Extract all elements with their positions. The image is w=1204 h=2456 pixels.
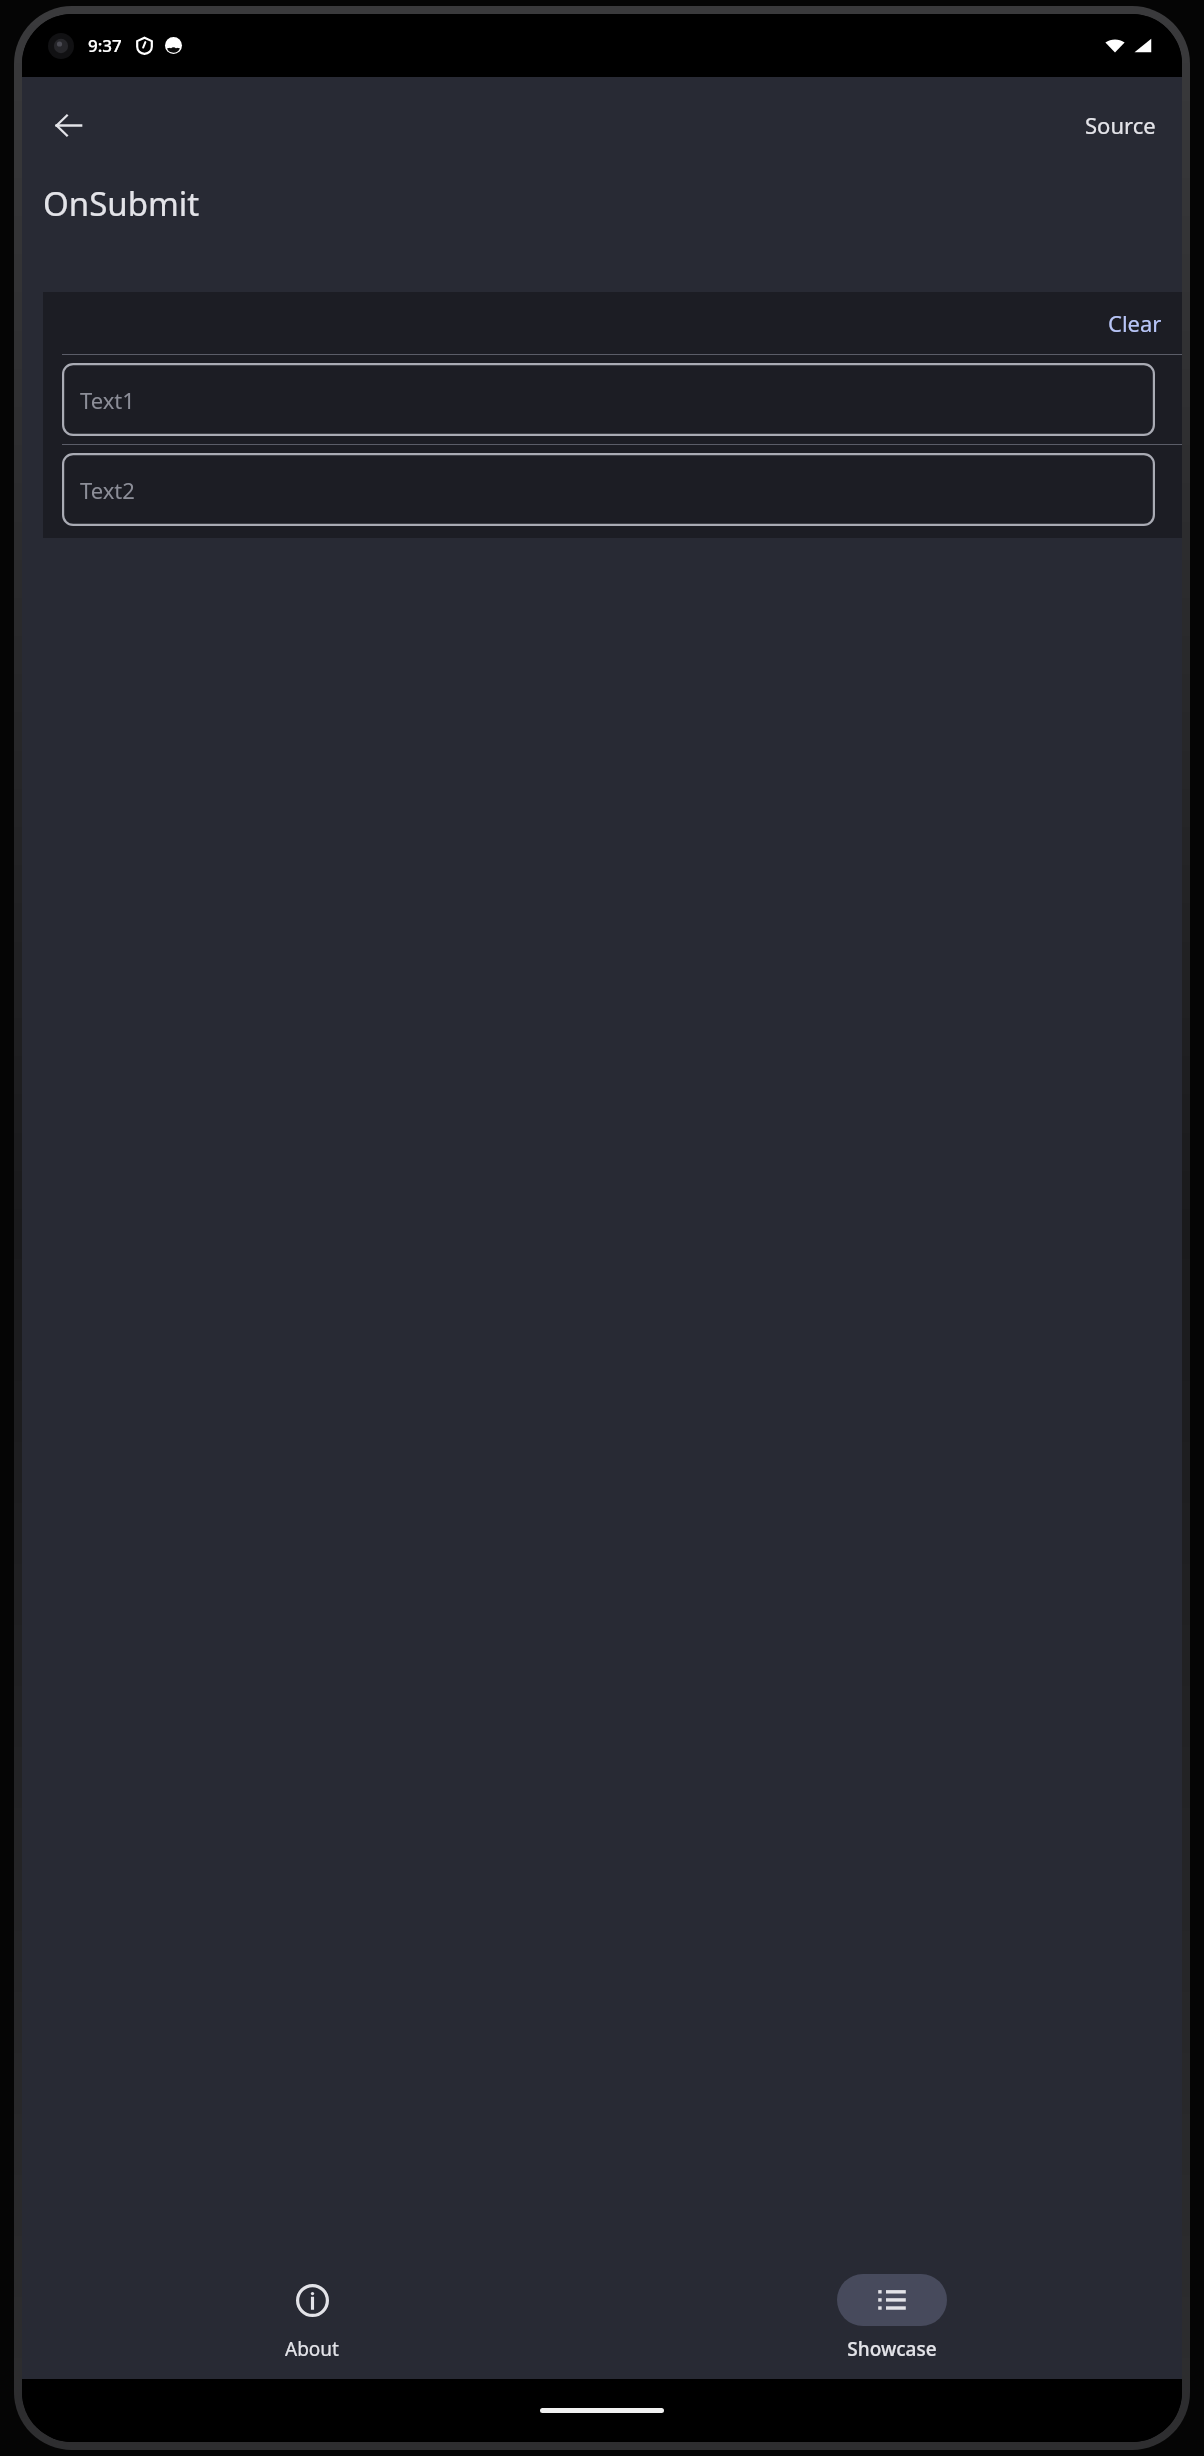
button[interactable]: Text1 bbox=[62, 363, 1155, 436]
staticText: Showcase bbox=[847, 2336, 937, 2362]
staticText: Text2 bbox=[80, 475, 135, 505]
staticText: About bbox=[285, 2336, 339, 2362]
staticText: 9:37 bbox=[88, 34, 122, 57]
staticText: OnSubmit bbox=[43, 181, 200, 226]
staticText: Text1 bbox=[80, 385, 135, 415]
button[interactable]: Source bbox=[1073, 102, 1168, 148]
button[interactable]: Text2 bbox=[62, 453, 1155, 526]
staticText: Clear bbox=[1108, 308, 1162, 338]
staticText: Source bbox=[1085, 110, 1156, 140]
button[interactable]: Clear bbox=[1096, 302, 1174, 344]
button[interactable]: Back bbox=[40, 97, 96, 153]
button[interactable]: About bbox=[22, 2257, 602, 2379]
button[interactable]: Showcase bbox=[602, 2257, 1182, 2379]
